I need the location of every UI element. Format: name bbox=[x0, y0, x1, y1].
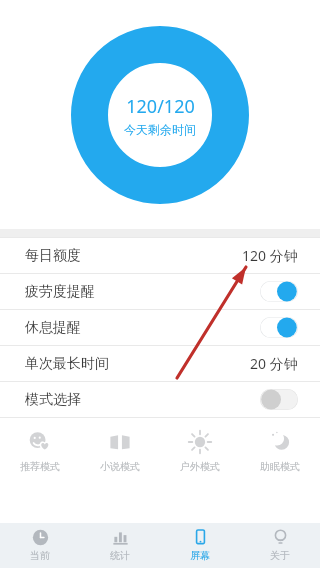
button[interactable]: Toggle on bbox=[260, 317, 298, 338]
button[interactable]: Toggle off bbox=[260, 389, 298, 410]
button[interactable]: 疲劳度提醒 bbox=[0, 274, 320, 309]
staticText: 120/120 bbox=[126, 94, 195, 119]
staticText: 屏幕 bbox=[190, 549, 210, 562]
button[interactable]: 模式选择 bbox=[0, 382, 320, 417]
staticText: 关于 bbox=[270, 549, 290, 562]
staticText: 120 分钟 bbox=[242, 246, 298, 265]
button[interactable]: 每日额度 bbox=[0, 238, 320, 273]
staticText: 当前 bbox=[30, 549, 50, 562]
button[interactable]: 单次最长时间 bbox=[0, 346, 320, 381]
staticText: 疲劳度提醒 bbox=[25, 283, 95, 301]
staticText: 模式选择 bbox=[25, 391, 81, 409]
staticText: 助眠模式 bbox=[260, 460, 300, 473]
staticText: 推荐模式 bbox=[20, 460, 60, 473]
button[interactable]: 户外模式 bbox=[160, 426, 240, 477]
staticText: 休息提醒 bbox=[25, 319, 81, 337]
staticText: 20 分钟 bbox=[250, 354, 298, 373]
button[interactable]: 小说模式 bbox=[80, 426, 160, 477]
button[interactable]: 关于 bbox=[240, 529, 320, 562]
staticText: 单次最长时间 bbox=[25, 355, 109, 373]
button[interactable]: 推荐模式 bbox=[0, 426, 80, 477]
button[interactable]: 助眠模式 bbox=[240, 426, 320, 477]
staticText: 小说模式 bbox=[100, 460, 140, 473]
button[interactable]: 休息提醒 bbox=[0, 310, 320, 345]
button[interactable]: Toggle on bbox=[260, 281, 298, 302]
staticText: 户外模式 bbox=[180, 460, 220, 473]
staticText: 每日额度 bbox=[25, 247, 81, 265]
staticText: 统计 bbox=[110, 549, 130, 562]
button[interactable]: 统计 bbox=[80, 529, 160, 562]
button[interactable]: 屏幕 bbox=[160, 529, 240, 562]
button[interactable]: 当前 bbox=[0, 529, 80, 562]
staticText: 今天剩余时间 bbox=[124, 122, 196, 137]
